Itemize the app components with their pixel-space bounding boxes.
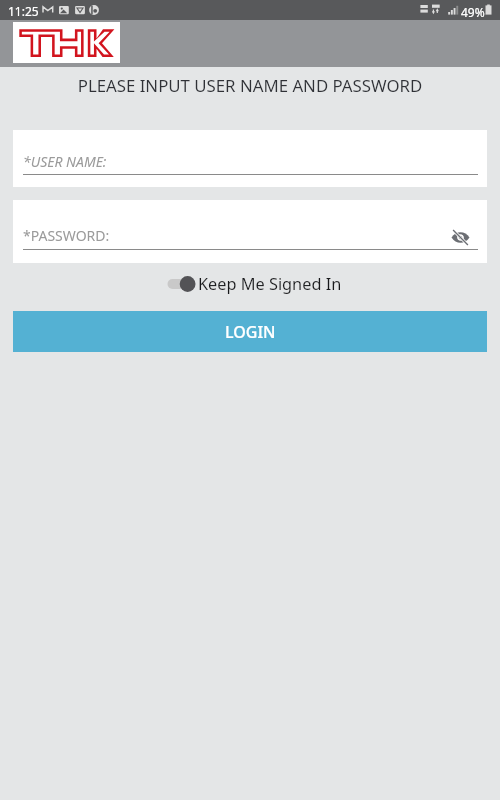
button[interactable]: *PASSWORD: xyxy=(13,200,487,263)
staticText: LOGIN xyxy=(225,321,276,343)
staticText: Keep Me Signed In xyxy=(198,273,342,295)
staticText: 49% xyxy=(461,4,485,20)
button[interactable]: Keep Me Signed In xyxy=(166,272,342,296)
button[interactable]: THK xyxy=(13,22,120,63)
staticText: 11:25 xyxy=(8,3,39,19)
button[interactable]: LOGIN xyxy=(13,311,487,352)
staticText: PLEASE INPUT USER NAME AND PASSWORD xyxy=(0,74,500,97)
staticText: *USER NAME: xyxy=(23,152,107,171)
staticText: *PASSWORD: xyxy=(23,226,110,245)
button[interactable]: Show password xyxy=(450,228,471,247)
button[interactable]: *USER NAME: xyxy=(13,130,487,187)
